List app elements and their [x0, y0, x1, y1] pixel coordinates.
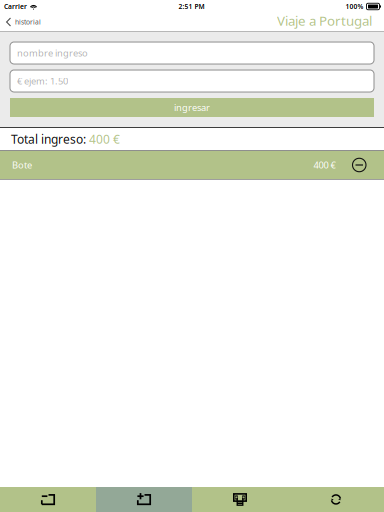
staticText: Bote	[12, 159, 32, 171]
button[interactable]: Actualizar	[288, 487, 384, 512]
staticText: ingresar	[174, 101, 210, 114]
button[interactable]: ingresar	[10, 98, 374, 117]
staticText: 400 €	[89, 131, 120, 147]
staticText: nombre ingreso	[17, 47, 88, 59]
button[interactable]: Gastos	[192, 487, 288, 512]
staticText: Carrier	[4, 2, 27, 11]
button[interactable]: Bote	[0, 151, 384, 179]
staticText: 2:51 PM	[178, 2, 204, 11]
staticText: 100%	[345, 2, 363, 11]
button[interactable]: Nuevo ingreso	[96, 487, 192, 512]
button[interactable]: historial	[0, 13, 49, 31]
staticText: Total ingreso:	[11, 131, 89, 147]
button[interactable]: Historial	[0, 487, 96, 512]
staticText: 400 €	[313, 159, 335, 171]
staticText: historial	[15, 18, 41, 26]
staticText: € ejem: 1.50	[17, 75, 68, 87]
staticText: Viaje a Portugal	[277, 12, 372, 29]
